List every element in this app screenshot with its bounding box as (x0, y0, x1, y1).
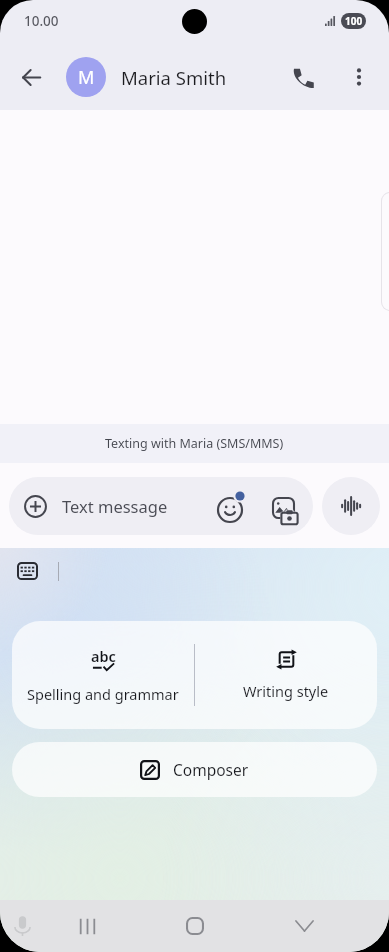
staticText: Texting with Maria (SMS/MMS) (105, 435, 284, 452)
staticText: 100 (345, 14, 363, 28)
staticText: 10.00 (24, 12, 59, 30)
button[interactable]: Recents (60, 900, 114, 952)
button[interactable]: Home (168, 900, 222, 952)
button[interactable]: Attach image (263, 489, 297, 523)
button[interactable]: Call (280, 54, 326, 100)
button[interactable]: Text message (9, 477, 313, 535)
staticText: Maria Smith (121, 65, 227, 90)
staticText: Composer (173, 759, 249, 780)
button[interactable]: Keyboard (13, 559, 41, 583)
button[interactable]: abc (12, 621, 194, 729)
staticText: Spelling and grammar (27, 684, 179, 704)
staticText: abc (91, 646, 116, 666)
button[interactable]: Hide keyboard (277, 900, 331, 952)
staticText: M (78, 65, 95, 90)
button[interactable]: Back (8, 54, 54, 100)
staticText: Writing style (243, 681, 329, 701)
button[interactable]: Voice input (0, 903, 45, 949)
button[interactable]: Voice message (322, 477, 380, 535)
button[interactable]: Composer (12, 742, 377, 797)
button[interactable]: Emoji (218, 489, 252, 523)
button[interactable]: Writing style (195, 621, 377, 729)
button[interactable]: More options (336, 54, 382, 100)
staticText: Text message (62, 495, 168, 517)
